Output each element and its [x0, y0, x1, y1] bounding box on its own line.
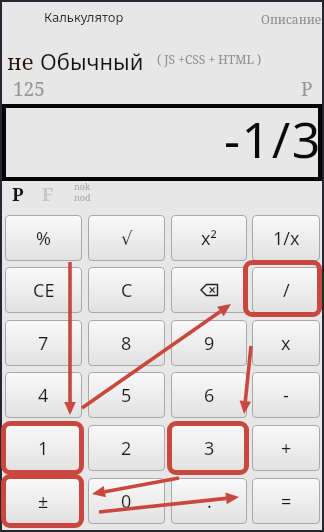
staticText: -1/3: [224, 105, 322, 173]
staticText: 8: [121, 331, 132, 356]
staticText: x²: [201, 226, 217, 251]
staticText: Обычный: [40, 46, 144, 76]
staticText: Калькулятор: [44, 8, 124, 26]
staticText: 0: [121, 489, 132, 514]
staticText: /: [283, 278, 290, 303]
staticText: 125: [13, 76, 45, 102]
staticText: 6: [204, 383, 215, 408]
staticText: не: [7, 46, 34, 76]
staticText: 5: [121, 383, 132, 408]
staticText: +: [281, 436, 292, 461]
staticText: %: [36, 226, 51, 251]
staticText: C: [121, 278, 133, 303]
staticText: x: [281, 331, 291, 356]
staticText: nod: [74, 191, 91, 203]
staticText: =: [281, 489, 292, 514]
staticText: √: [121, 228, 133, 249]
staticText: 2: [121, 436, 132, 461]
staticText: -: [283, 383, 289, 408]
staticText: P: [301, 76, 313, 102]
staticText: 1: [38, 436, 49, 461]
staticText: CE: [33, 278, 55, 303]
staticText: ±: [38, 489, 49, 514]
staticText: F: [42, 182, 54, 207]
staticText: nok: [74, 180, 91, 192]
staticText: ( JS +CSS + HTML ): [157, 51, 262, 67]
staticText: 7: [38, 331, 49, 356]
staticText: 4: [38, 383, 49, 408]
staticText: Описание: [261, 11, 322, 27]
staticText: 3: [204, 436, 215, 461]
staticText: 1/x: [273, 226, 300, 251]
staticText: 9: [204, 331, 215, 356]
staticText: .: [207, 489, 212, 514]
staticText: P: [12, 182, 24, 207]
